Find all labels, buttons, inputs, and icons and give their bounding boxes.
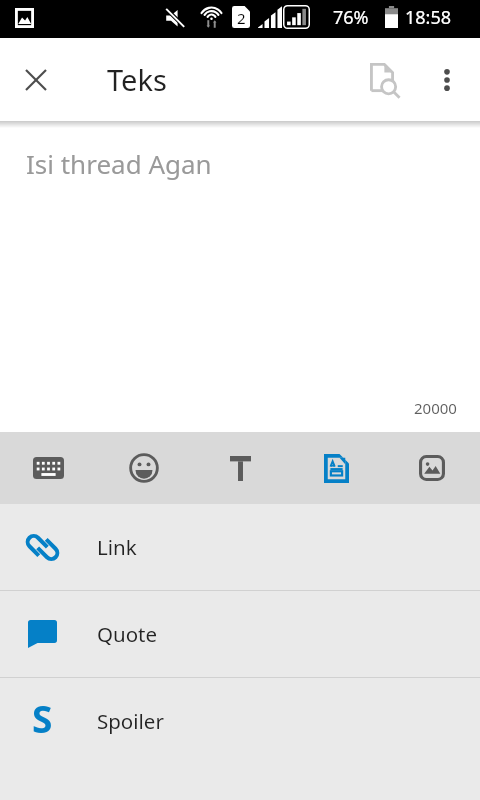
staticText: Link xyxy=(97,533,137,561)
button[interactable]: Close xyxy=(0,44,72,116)
staticText: Isi thread Agan xyxy=(26,146,212,181)
staticText: 76% xyxy=(333,5,369,30)
button[interactable]: Emoji xyxy=(96,432,192,504)
button[interactable]: S xyxy=(0,678,480,764)
staticText: 20000 xyxy=(414,398,457,418)
staticText: Quote xyxy=(97,620,158,648)
staticText: S xyxy=(32,693,53,743)
button[interactable]: Template xyxy=(288,432,384,504)
button[interactable]: Image xyxy=(384,432,480,504)
button[interactable]: More options xyxy=(419,52,475,108)
staticText: Teks xyxy=(107,60,167,99)
button[interactable]: Link xyxy=(0,504,480,590)
button[interactable]: Keyboard xyxy=(0,432,96,504)
staticText: Spoiler xyxy=(97,707,164,735)
button[interactable]: Quote xyxy=(0,591,480,677)
button[interactable]: Preview xyxy=(357,52,413,108)
staticText: 2 xyxy=(237,8,246,28)
button[interactable]: Text format xyxy=(192,432,288,504)
staticText: 18:58 xyxy=(405,5,452,30)
